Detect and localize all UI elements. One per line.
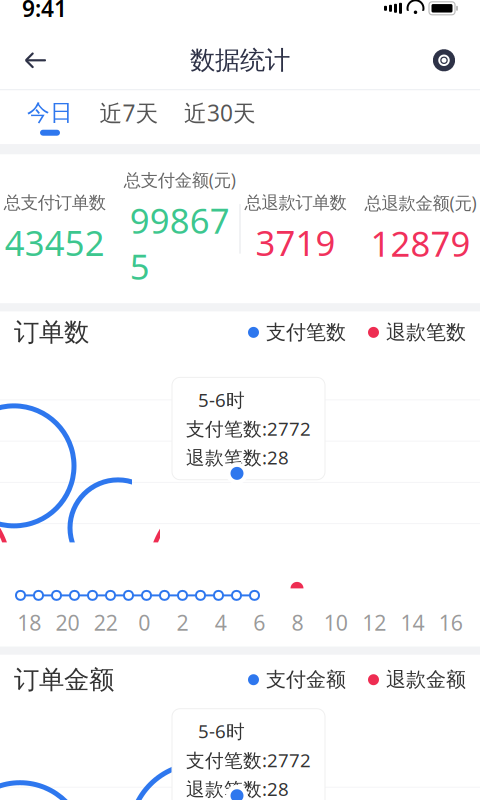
staticText: 近7天	[99, 98, 158, 128]
staticText: 支付笔数:2772	[186, 416, 311, 441]
staticText: 总退款订单数	[244, 192, 346, 213]
staticText: 订单数	[14, 317, 89, 348]
staticText: 14	[400, 608, 424, 637]
staticText: 退款笔数:28	[186, 445, 289, 470]
staticText: 退款笔数:28	[186, 776, 289, 800]
staticText: 12	[362, 608, 386, 637]
staticText: 支付金额	[266, 667, 346, 692]
staticText: 数据统计	[190, 45, 290, 76]
staticText: 退款笔数	[386, 320, 466, 345]
staticText: 总退款金额(元)	[364, 191, 476, 214]
staticText: 20	[55, 608, 79, 637]
staticText: 18	[17, 608, 41, 637]
staticText: 0	[138, 608, 150, 637]
staticText: 支付笔数:2772	[186, 747, 311, 772]
button[interactable]: 返回	[14, 38, 58, 82]
staticText: 43452	[5, 219, 105, 265]
button[interactable]: 近7天	[86, 90, 172, 144]
staticText: 22	[94, 608, 118, 637]
staticText: 总支付订单数	[4, 192, 106, 213]
staticText: 近30天	[184, 98, 256, 128]
button[interactable]: 今日	[14, 90, 86, 144]
staticText: 5-6时	[198, 387, 245, 412]
staticText: 4	[215, 608, 227, 637]
staticText: 8	[291, 608, 303, 637]
staticText: 16	[439, 608, 463, 637]
staticText: 今日	[27, 99, 73, 127]
staticText: 6	[253, 608, 265, 637]
staticText: 订单金额	[14, 664, 114, 695]
staticText: 退款金额	[386, 667, 466, 692]
staticText: 2	[176, 608, 188, 637]
staticText: 998675	[130, 197, 230, 289]
staticText: 支付笔数	[266, 320, 346, 345]
staticText: 10	[324, 608, 348, 637]
staticText: 5-6时	[198, 719, 245, 743]
staticText: 9:41	[22, 0, 67, 23]
staticText: 12879	[370, 220, 470, 266]
button[interactable]: 近30天	[172, 90, 268, 144]
button[interactable]: 设置	[422, 38, 466, 82]
staticText: 总支付金额(元)	[124, 168, 236, 191]
staticText: 3719	[255, 219, 335, 265]
